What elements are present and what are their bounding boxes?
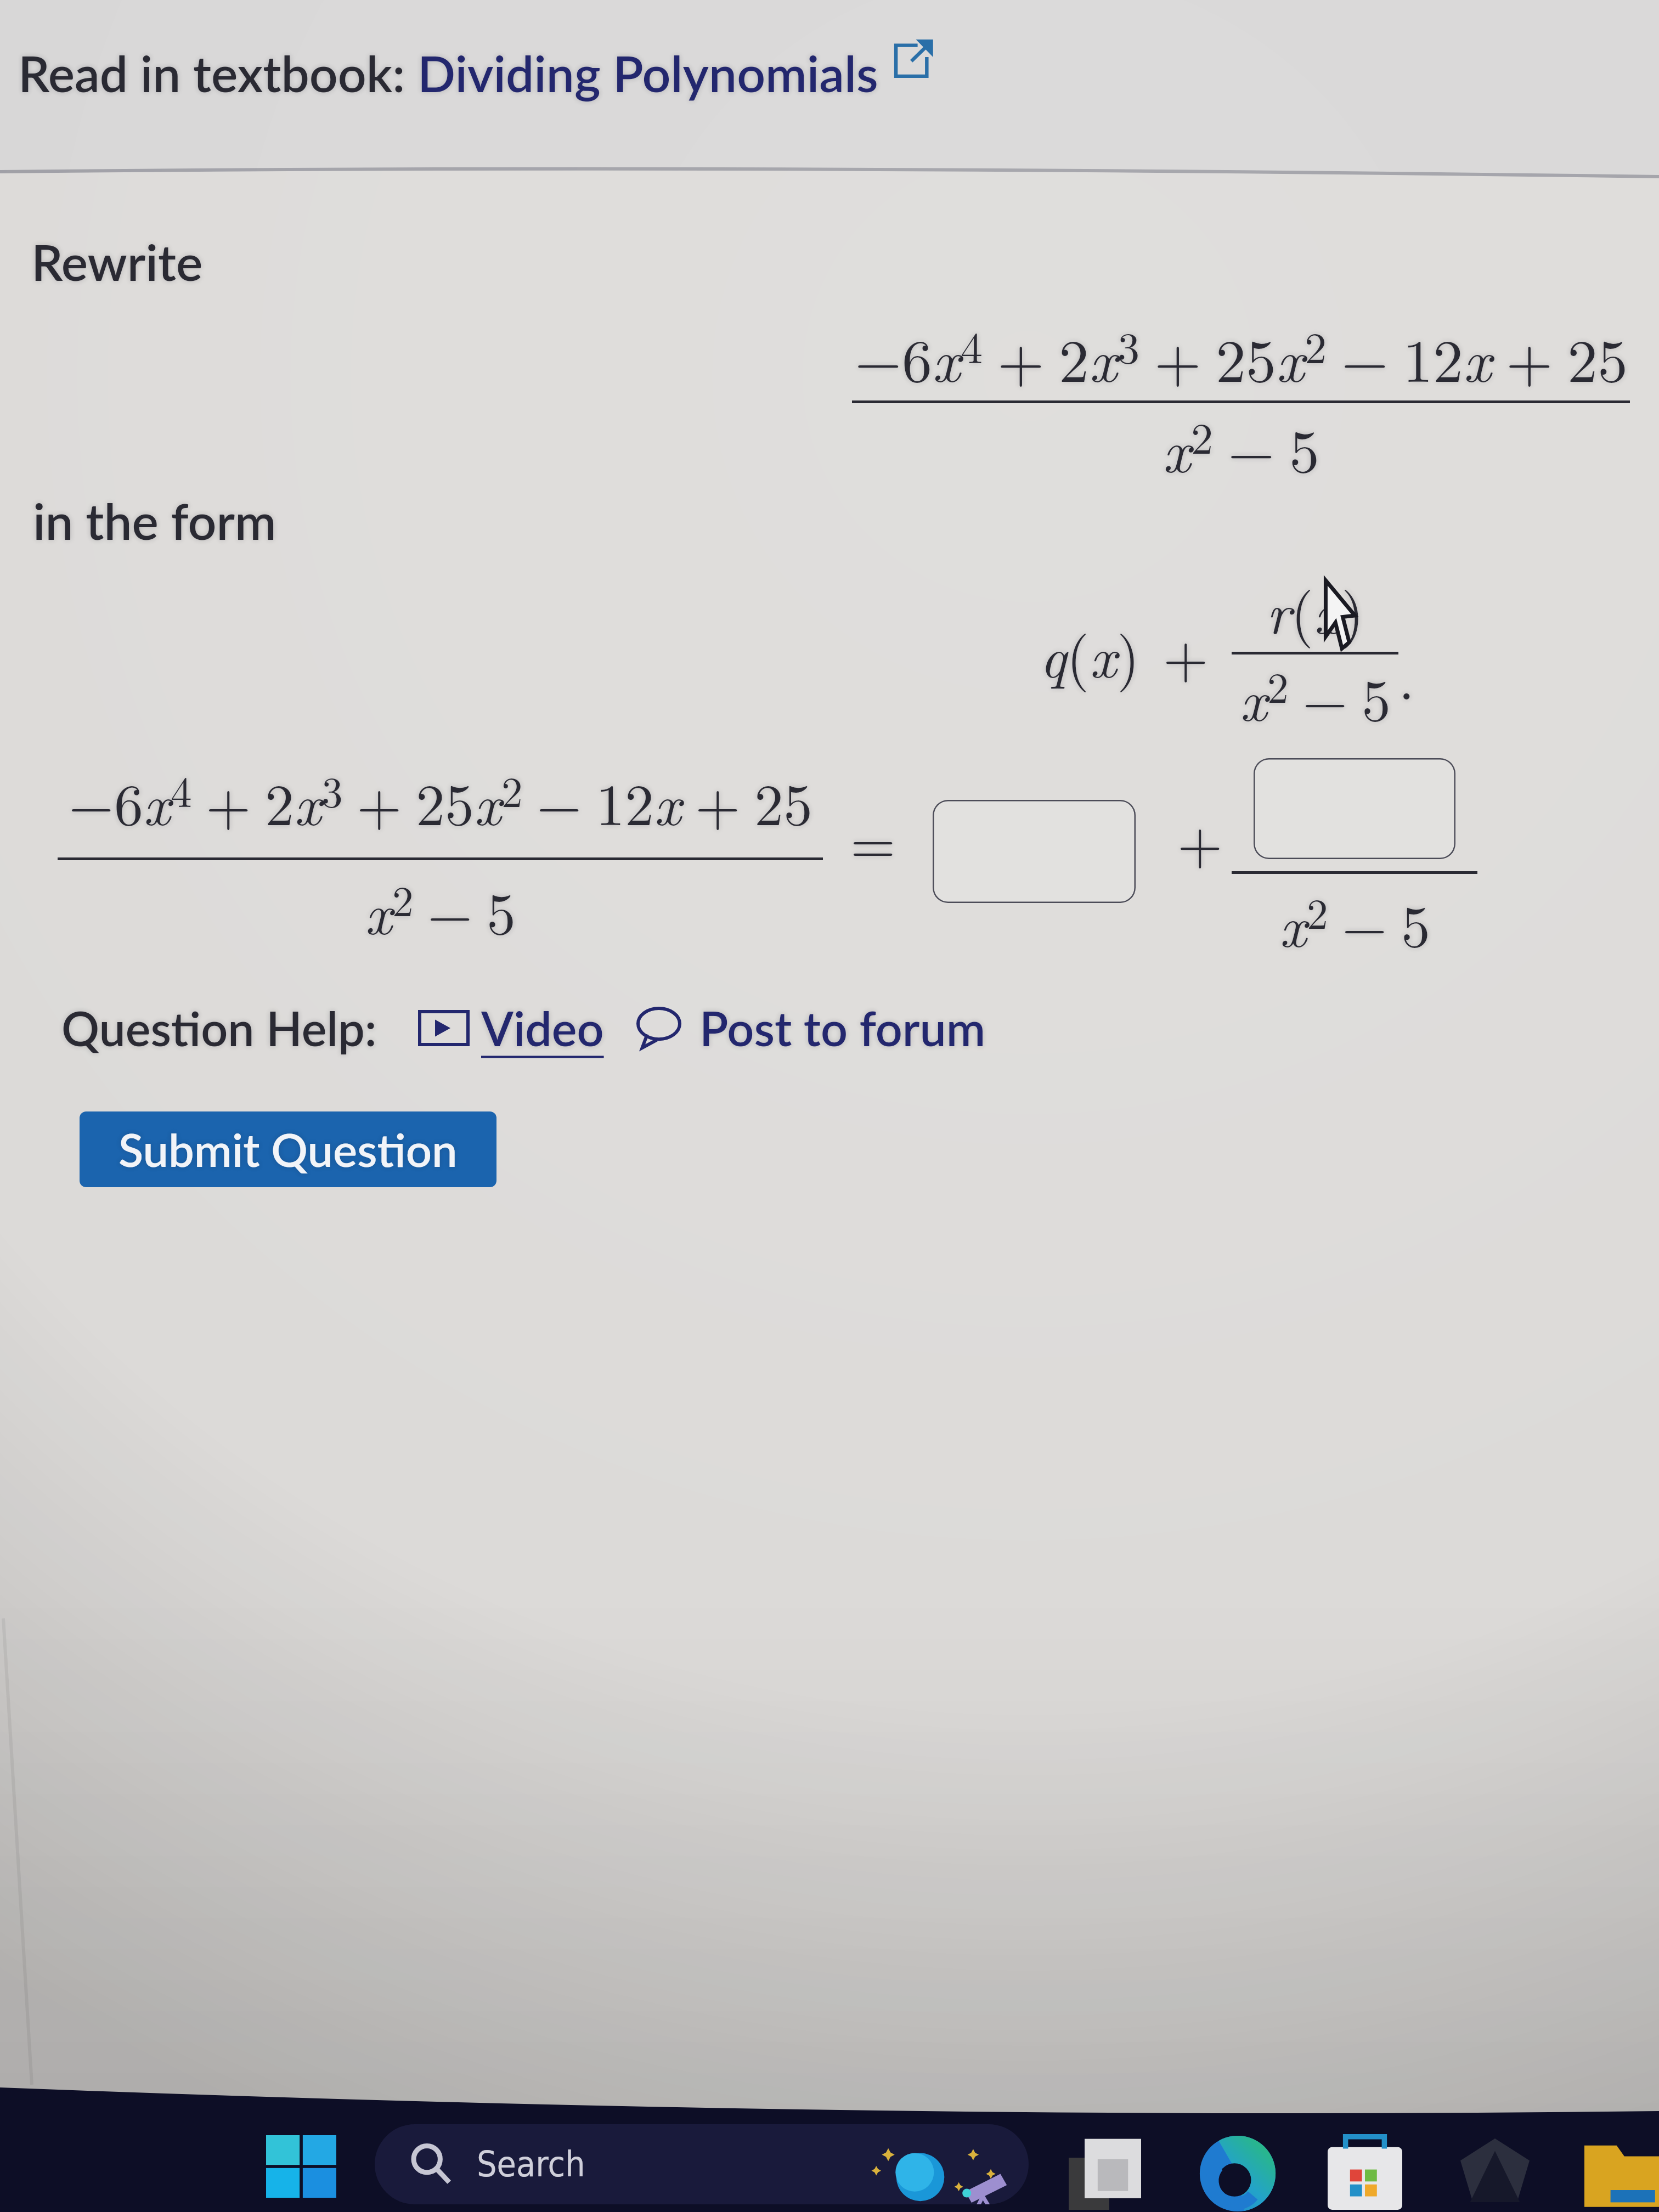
staticText: 6 <box>114 760 143 842</box>
staticText: 3 <box>1118 314 1140 376</box>
button[interactable]: Taskbar app <box>1584 2136 1659 2212</box>
button[interactable]: Video <box>420 1000 604 1056</box>
staticText: Video <box>481 1000 604 1056</box>
staticText: 25 <box>1567 314 1628 399</box>
staticText: x <box>474 760 501 842</box>
staticText: x <box>1463 314 1492 399</box>
button[interactable]: Submit Question <box>80 1111 496 1187</box>
staticText: − <box>537 760 582 842</box>
staticText: x <box>1090 612 1117 695</box>
staticText: x <box>1276 314 1305 399</box>
button[interactable]: Taskbar app <box>1460 2138 1530 2208</box>
staticText: 12 <box>1403 314 1463 399</box>
button[interactable] <box>1254 758 1455 859</box>
staticText: r <box>1266 568 1291 651</box>
staticText: 4 <box>961 314 983 376</box>
staticText: 25 <box>754 760 812 842</box>
staticText: x <box>1240 656 1267 738</box>
staticText: + <box>357 760 402 842</box>
staticText: 2 <box>392 868 414 929</box>
staticText: + <box>1154 314 1201 399</box>
staticText: x <box>932 314 961 399</box>
button[interactable]: Taskbar app <box>1198 2134 1277 2212</box>
button[interactable]: Taskbar app <box>1069 2137 1141 2210</box>
staticText: x <box>294 760 321 842</box>
staticText: Search <box>477 2144 585 2185</box>
staticText: 2 <box>265 760 294 842</box>
staticText: x <box>365 869 392 951</box>
staticText: 25 <box>416 760 474 842</box>
staticText: x <box>1089 314 1118 399</box>
staticText: 3 <box>321 759 343 820</box>
staticText: − <box>427 869 473 951</box>
staticText: − <box>1302 656 1348 738</box>
staticText: q <box>1040 612 1066 695</box>
staticText: − <box>855 314 902 399</box>
staticText: − <box>1228 404 1275 490</box>
staticText: − <box>1342 882 1387 964</box>
staticText: 2 <box>1305 314 1327 376</box>
staticText: 2 <box>501 759 523 820</box>
staticText: Dividing Polynomials <box>417 43 878 103</box>
staticText: 2 <box>1059 314 1089 399</box>
staticText: Read in textbook: <box>18 43 417 103</box>
staticText: 2 <box>1267 655 1289 715</box>
staticText: 4 <box>171 759 192 820</box>
staticText: = <box>850 798 896 881</box>
staticText: Submit Question <box>119 1122 458 1177</box>
button[interactable] <box>933 800 1136 903</box>
staticText: + <box>695 760 741 842</box>
staticText: 25 <box>1216 314 1276 399</box>
staticText: . <box>1398 634 1415 716</box>
staticText: ) <box>1341 568 1364 651</box>
staticText: + <box>1506 314 1553 399</box>
staticText: 5 <box>1362 656 1391 738</box>
button[interactable]: Search <box>375 2124 1029 2204</box>
staticText: 2 <box>1191 404 1214 467</box>
button[interactable]: Read in textbook: <box>18 43 934 103</box>
staticText: Rewrite <box>31 232 203 291</box>
staticText: − <box>69 760 114 842</box>
staticText: 12 <box>596 760 654 842</box>
staticText: 6 <box>902 314 932 399</box>
staticText: Question Help: <box>61 1000 377 1056</box>
staticText: + <box>1163 612 1209 695</box>
button[interactable]: Post to forum <box>638 1000 986 1056</box>
staticText: + <box>1177 798 1223 881</box>
staticText: x <box>1279 882 1307 964</box>
button[interactable]: Start <box>266 2135 336 2198</box>
staticText: + <box>997 314 1045 399</box>
staticText: 5 <box>487 869 516 951</box>
other: Open textbook in new tab <box>893 39 934 81</box>
staticText: 5 <box>1289 404 1319 490</box>
staticText: ) <box>1117 612 1140 695</box>
staticText: Post to forum <box>699 1000 986 1056</box>
staticText: x <box>654 760 681 842</box>
staticText: x <box>143 760 171 842</box>
staticText: ( <box>1066 612 1090 695</box>
staticText: + <box>206 760 251 842</box>
staticText: 5 <box>1401 882 1430 964</box>
staticText: − <box>1341 314 1389 399</box>
staticText: ( <box>1291 568 1314 651</box>
button[interactable]: Taskbar app <box>1328 2135 1402 2210</box>
staticText: 2 <box>1307 881 1328 941</box>
staticText: in the form <box>33 490 276 550</box>
staticText: x <box>1314 568 1341 651</box>
staticText: x <box>1163 404 1191 490</box>
